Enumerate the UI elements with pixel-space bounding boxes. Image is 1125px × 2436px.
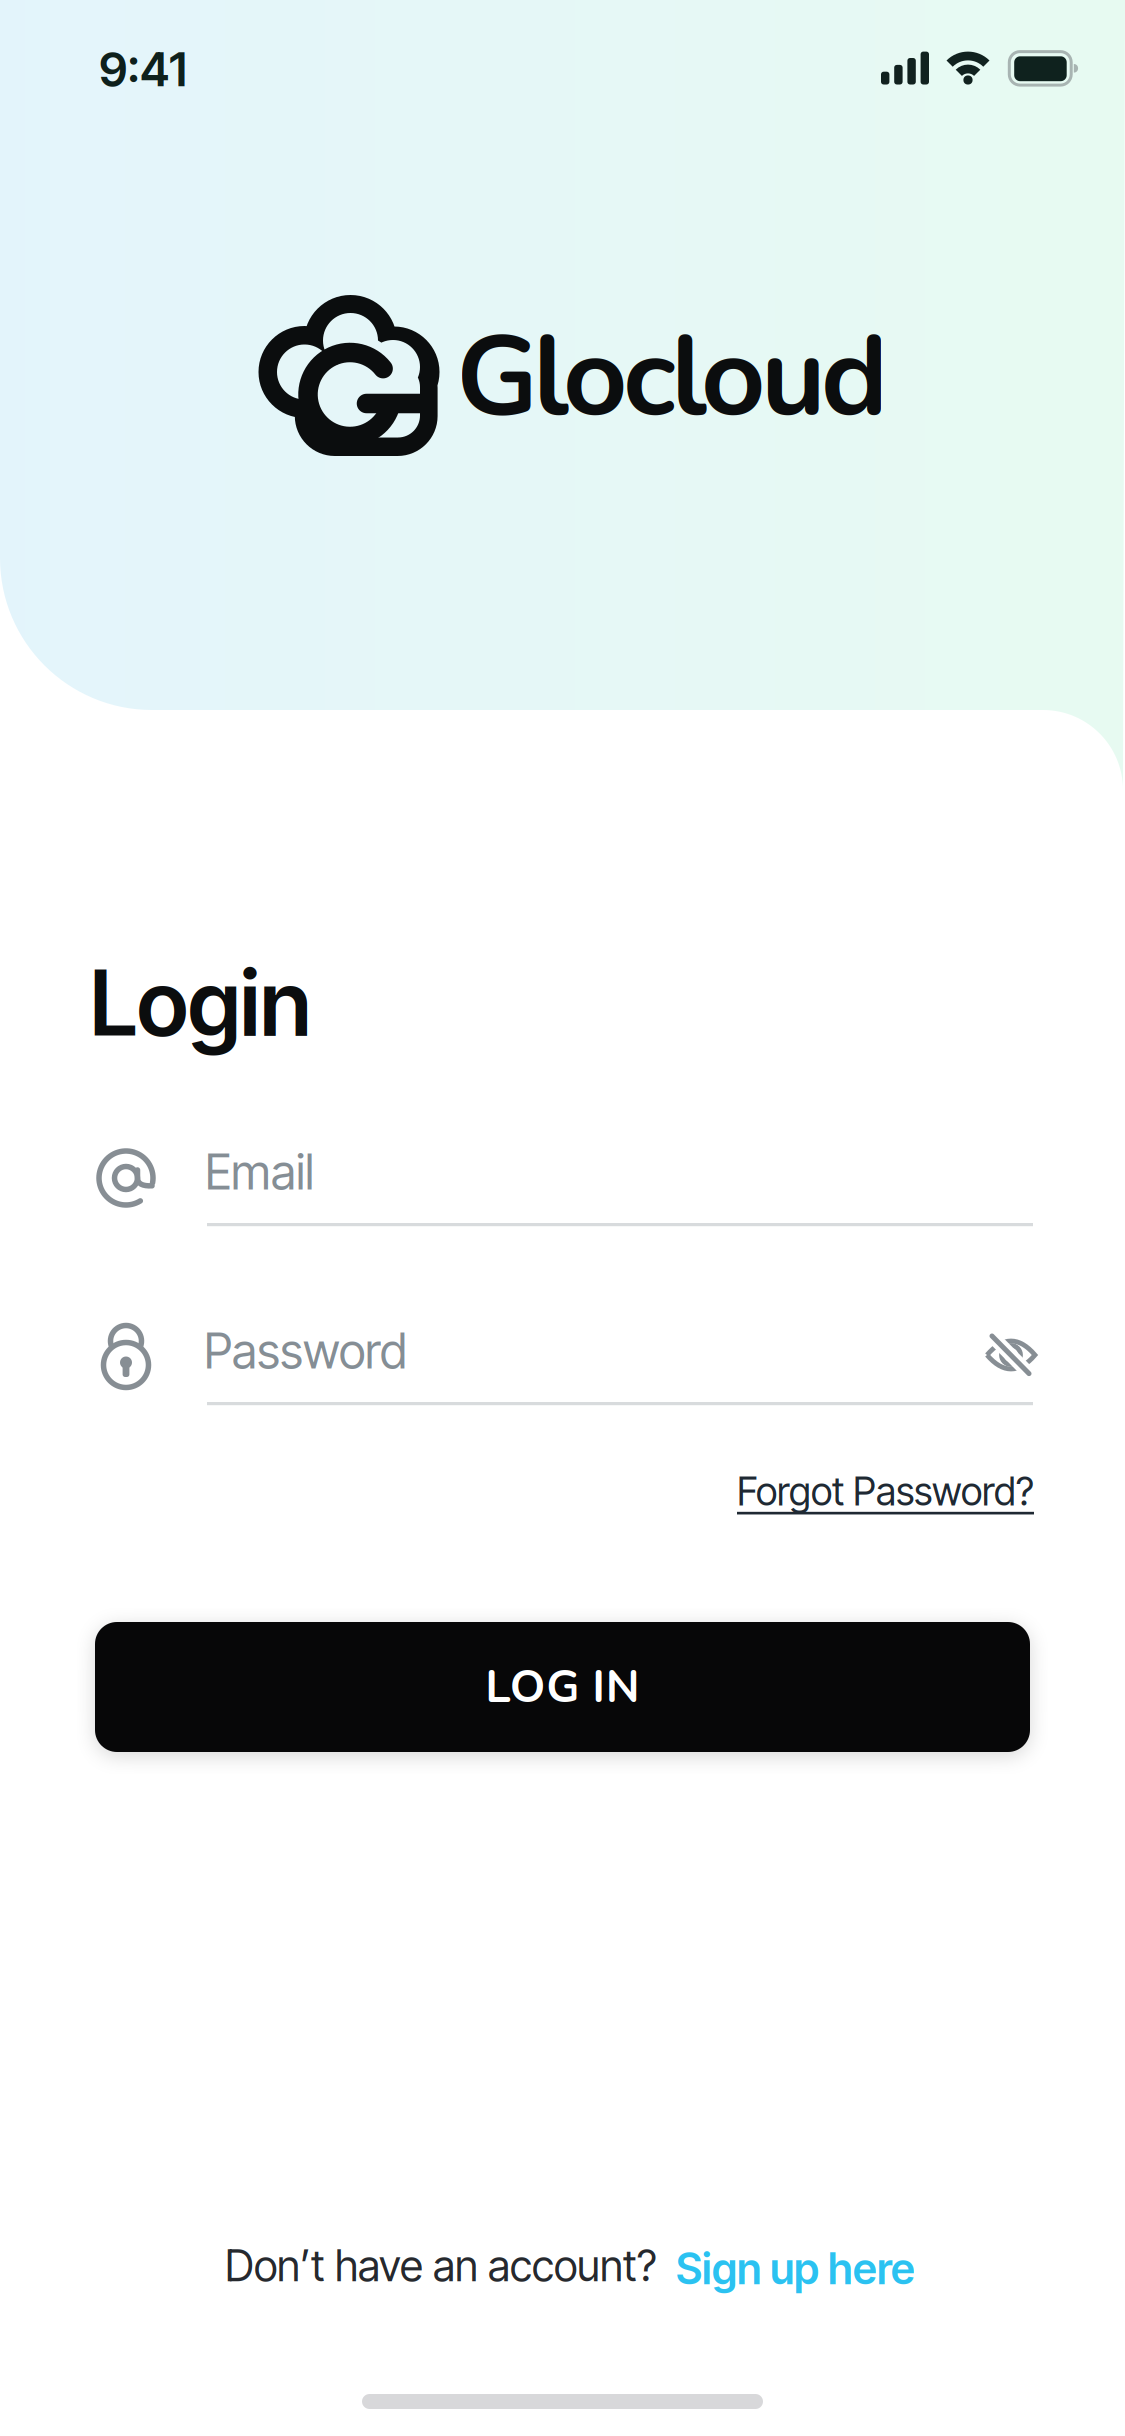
staticText: Login <box>90 949 311 1057</box>
staticText: 9:41 <box>99 41 187 97</box>
button[interactable]: Show password <box>971 1315 1051 1395</box>
staticText: Don’t have an account? <box>225 2240 657 2292</box>
button[interactable]: Email <box>95 1120 1033 1240</box>
button[interactable]: Sign up here <box>676 2243 915 2295</box>
button[interactable]: LOG IN <box>95 1622 1030 1752</box>
staticText: LOG IN <box>485 1656 640 1718</box>
button[interactable]: Password <box>95 1300 1033 1420</box>
staticText: Sign up here <box>676 2243 915 2295</box>
staticText: Glocloud <box>456 301 888 454</box>
staticText: Password <box>204 1322 407 1380</box>
staticText: Email <box>205 1143 314 1201</box>
staticText: Forgot Password? <box>737 1468 1034 1515</box>
button[interactable]: Forgot Password? <box>737 1468 1034 1515</box>
